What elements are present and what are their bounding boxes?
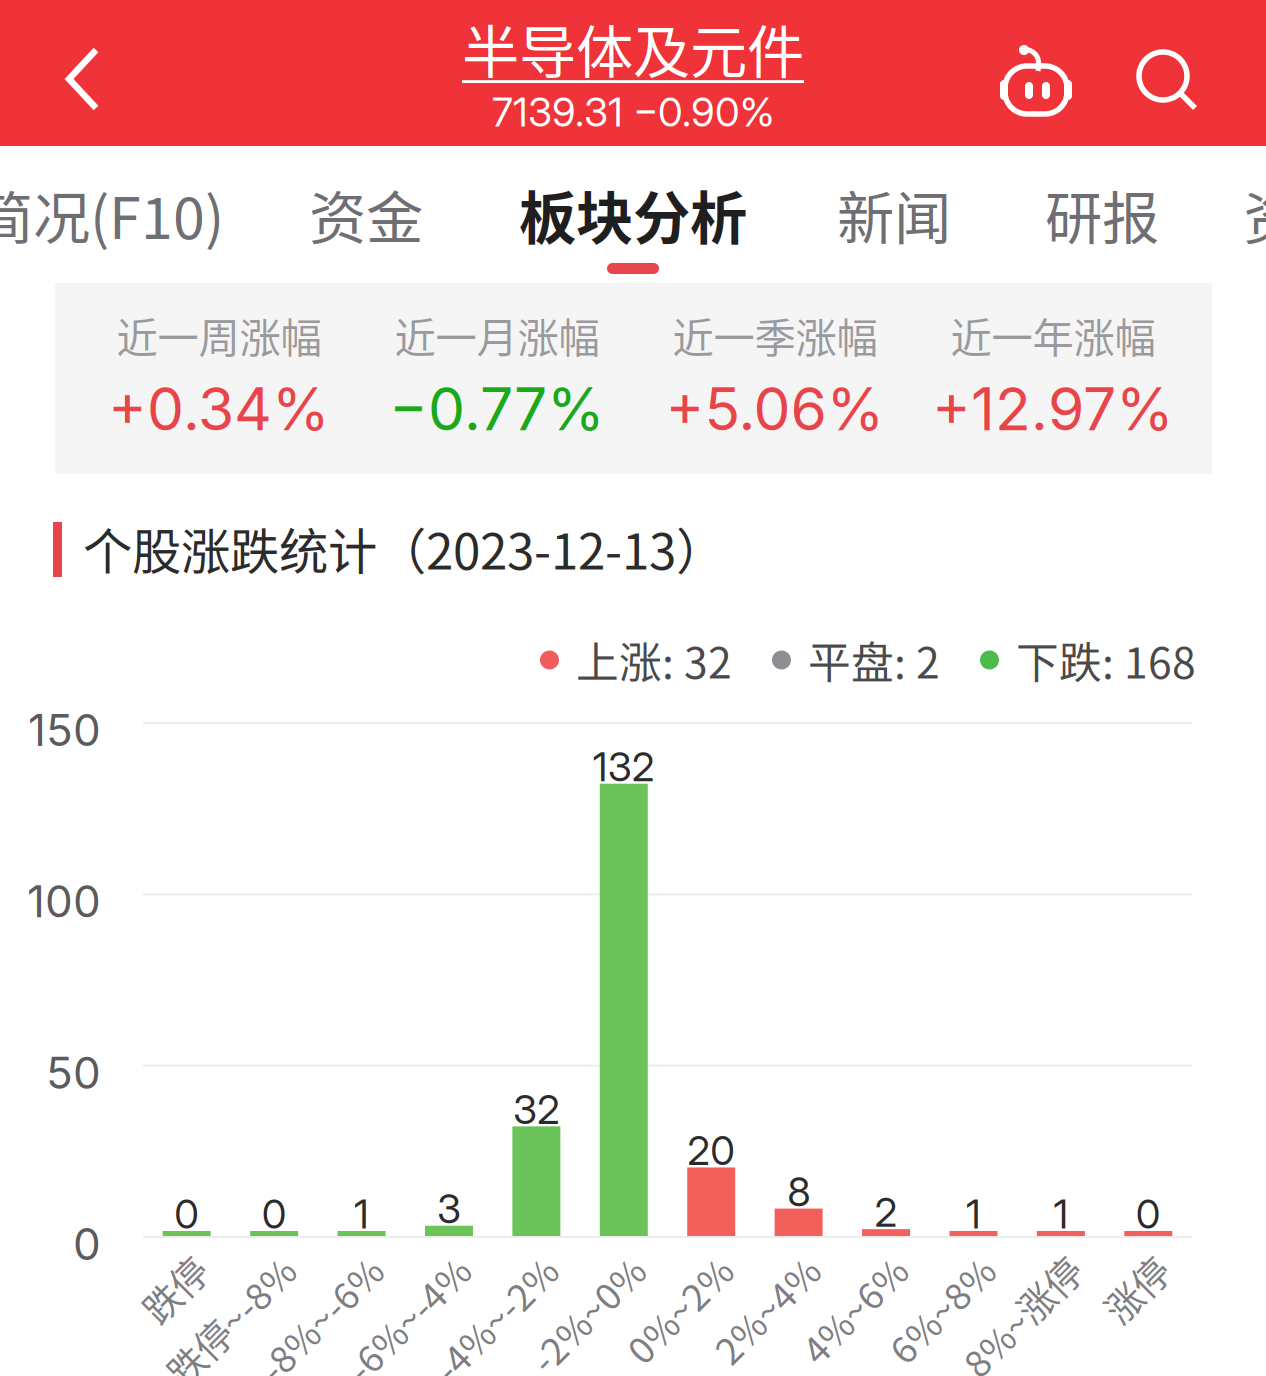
staticText: 资 (1243, 172, 1266, 255)
staticText: +5.06% (665, 373, 884, 444)
staticText: 3 (437, 1184, 461, 1233)
staticText: 个股涨跌统计（2023-12-13） (83, 512, 725, 584)
button[interactable]: 新闻 (729, 146, 1059, 282)
staticText: +12.97% (932, 373, 1174, 444)
staticText: 下跌: 168 (1016, 629, 1196, 691)
button[interactable]: 板块分析 (468, 146, 798, 282)
staticText: 1 (1053, 1190, 1068, 1238)
staticText: 上涨: 32 (576, 629, 732, 691)
staticText: 新闻 (837, 172, 951, 255)
staticText: 跌停 (127, 1236, 201, 1290)
staticText: 6%~8% (856, 1236, 987, 1290)
staticText: 7139.31 −0.90% (492, 88, 774, 136)
staticText: -6%~-4% (306, 1236, 463, 1290)
staticText: 跌停~-8% (125, 1236, 288, 1290)
button[interactable]: AI assistant (998, 45, 1074, 115)
staticText: 2%~4% (682, 1236, 813, 1290)
staticText: 平盘: 2 (808, 629, 940, 691)
staticText: 半导体及元件 (462, 6, 804, 89)
staticText: 0%~2% (594, 1236, 725, 1290)
button[interactable]: 简况(F10) (0, 146, 265, 282)
staticText: -4%~-2% (393, 1236, 550, 1290)
button[interactable]: Back (0, 0, 168, 146)
staticText: 32 (513, 1085, 560, 1133)
staticText: −0.77% (389, 373, 605, 444)
staticText: 近一年涨幅 (950, 305, 1155, 365)
staticText: 涨停 (1088, 1236, 1162, 1290)
staticText: 20 (687, 1126, 735, 1175)
staticText: 132 (593, 742, 655, 791)
button[interactable]: Search (1139, 52, 1201, 114)
staticText: 研报 (1045, 172, 1159, 255)
staticText: 4%~6% (769, 1236, 900, 1290)
staticText: 近一季涨幅 (672, 305, 877, 365)
button[interactable]: 资 (1107, 146, 1266, 282)
staticText: 0 (1136, 1190, 1161, 1238)
staticText: 8 (787, 1167, 810, 1216)
staticText: 1 (966, 1190, 981, 1238)
staticText: 0 (73, 1217, 101, 1271)
staticText: 2 (874, 1188, 897, 1236)
button[interactable]: 研报 (937, 146, 1266, 282)
staticText: -8%~-6% (218, 1236, 375, 1290)
staticText: 150 (28, 703, 101, 757)
staticText: 0 (174, 1190, 199, 1238)
staticText: 简况(F10) (0, 172, 224, 255)
staticText: 0 (262, 1190, 287, 1238)
staticText: 近一月涨幅 (394, 305, 599, 365)
staticText: -2%~0% (494, 1236, 638, 1290)
staticText: 板块分析 (519, 172, 747, 255)
staticText: 100 (27, 875, 101, 928)
staticText: 8%~涨停 (925, 1236, 1075, 1290)
staticText: 资金 (309, 172, 423, 255)
staticText: +0.34% (108, 373, 330, 444)
staticText: 50 (46, 1046, 101, 1099)
button[interactable]: 资金 (201, 146, 531, 282)
staticText: 1 (354, 1190, 369, 1238)
staticText: 近一周涨幅 (116, 305, 321, 365)
